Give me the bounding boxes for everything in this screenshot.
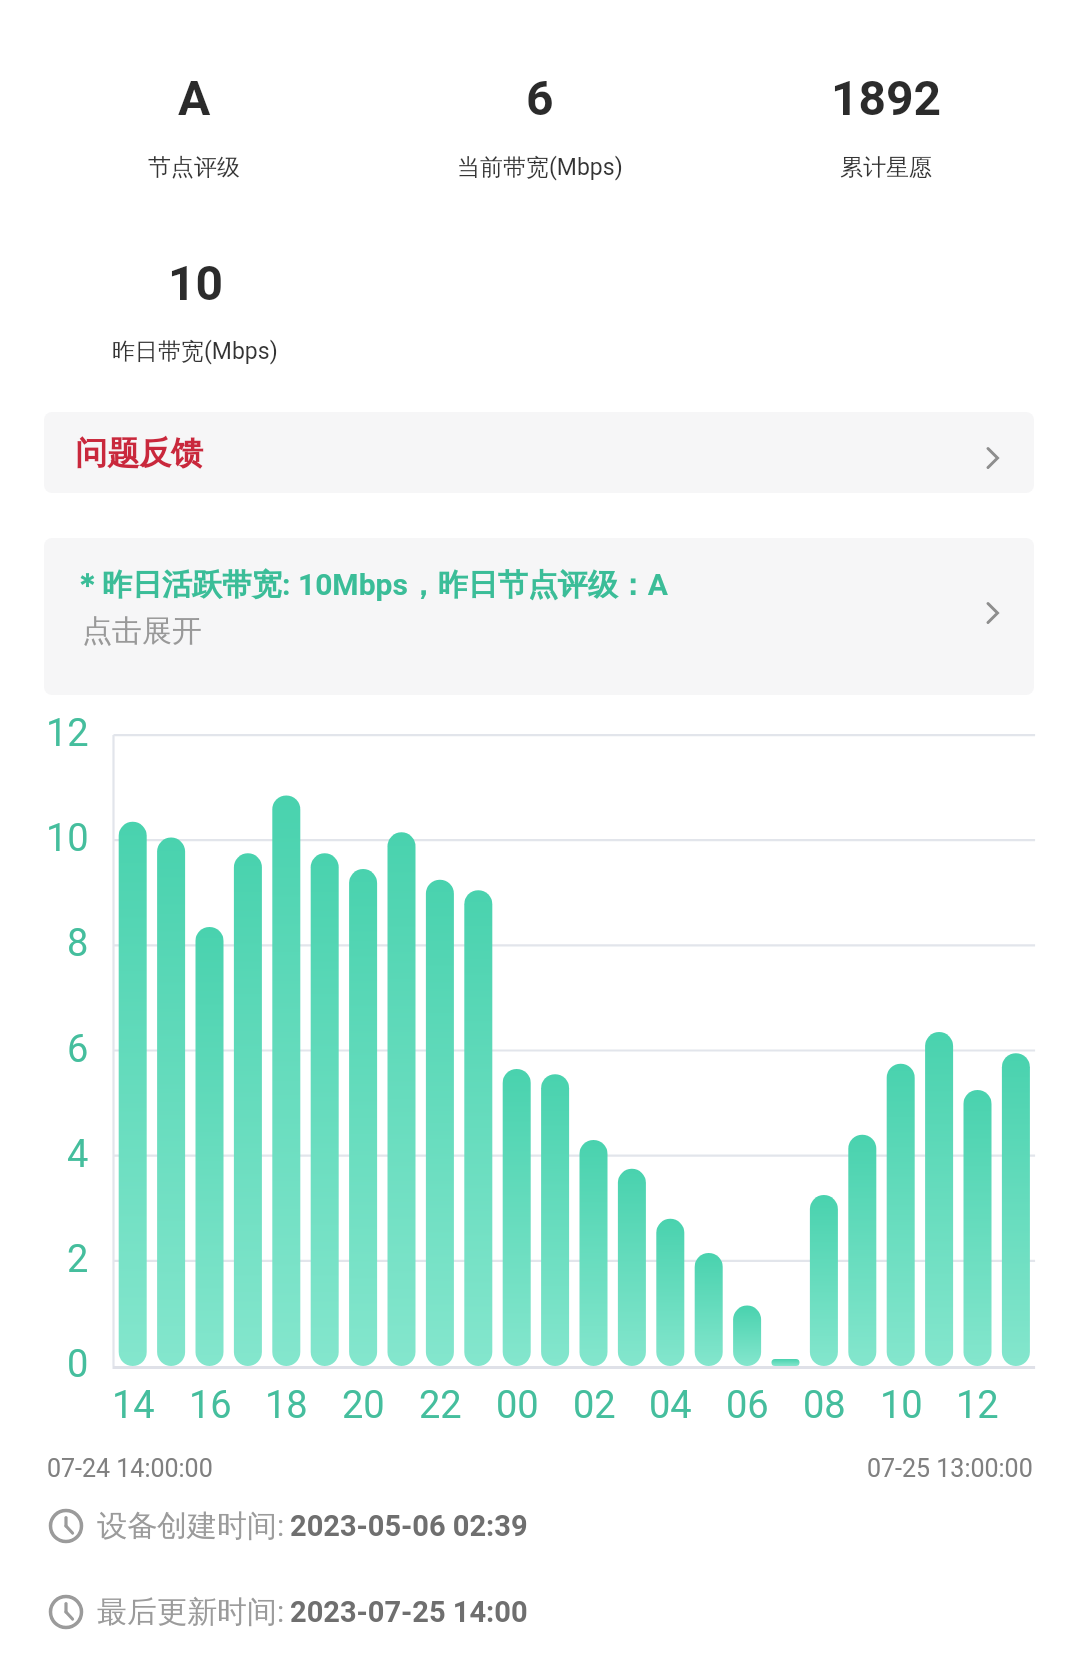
staticText: 当前带宽(Mbps): [457, 153, 623, 182]
staticText: 问题反馈: [75, 433, 203, 473]
button[interactable]: [44, 538, 1034, 695]
staticText: 06: [726, 1383, 769, 1428]
staticText: 02: [573, 1383, 616, 1428]
staticText: 12: [46, 711, 89, 756]
staticText: 2023-05-06 02:39: [290, 1509, 528, 1543]
staticText: 00: [496, 1383, 539, 1428]
staticText: 累计星愿: [840, 153, 932, 182]
staticText: 0: [67, 1342, 89, 1387]
staticText: 18: [265, 1383, 308, 1428]
staticText: 2: [67, 1237, 89, 1282]
staticText: 07-24 14:00:00: [47, 1454, 213, 1483]
staticText: 节点评级: [148, 153, 240, 182]
staticText: 10: [46, 816, 89, 861]
staticText: 07-25 13:00:00: [867, 1454, 1033, 1483]
staticText: 8: [67, 921, 89, 966]
staticText: 08: [803, 1383, 846, 1428]
staticText: 昨日带宽(Mbps): [112, 337, 278, 366]
staticText: A: [178, 70, 211, 126]
staticText: 16: [189, 1383, 232, 1428]
staticText: 20: [342, 1383, 385, 1428]
staticText: ＊昨日活跃带宽: 10Mbps，昨日节点评级：A: [72, 566, 669, 604]
staticText: 4: [67, 1132, 89, 1177]
staticText: 04: [649, 1383, 692, 1428]
staticText: 14: [112, 1383, 155, 1428]
staticText: 10: [168, 255, 224, 311]
staticText: 6: [67, 1027, 89, 1072]
staticText: 设备创建时间:: [97, 1507, 285, 1545]
staticText: 点击展开: [82, 612, 202, 650]
staticText: 6: [526, 70, 554, 126]
staticText: 1892: [831, 70, 942, 126]
button[interactable]: 问题反馈: [44, 412, 1034, 493]
staticText: 最后更新时间:: [97, 1593, 285, 1631]
staticText: 12: [956, 1383, 999, 1428]
staticText: 10: [880, 1383, 923, 1428]
staticText: 2023-07-25 14:00: [290, 1595, 528, 1629]
staticText: 22: [419, 1383, 462, 1428]
